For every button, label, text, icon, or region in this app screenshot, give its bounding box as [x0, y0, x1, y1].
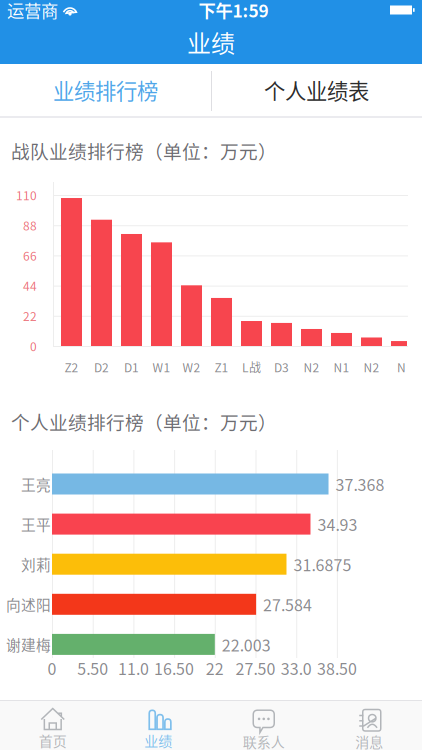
button[interactable]: 个人业绩表: [211, 64, 422, 116]
staticText: D3: [274, 358, 289, 376]
staticText: 业绩排行榜: [53, 75, 158, 105]
staticText: 首页: [39, 730, 67, 750]
staticText: 谢建梅: [6, 634, 51, 655]
staticText: N1: [333, 358, 349, 376]
staticText: 38.50: [317, 656, 357, 680]
staticText: 0: [30, 337, 37, 355]
staticText: 27.584: [263, 593, 312, 616]
staticText: 22: [206, 656, 224, 680]
staticText: 66: [23, 247, 37, 264]
staticText: 16.50: [154, 656, 194, 680]
staticText: 向述阳: [6, 594, 51, 615]
staticText: 0: [47, 656, 56, 680]
staticText: D2: [94, 358, 109, 376]
staticText: D1: [124, 358, 139, 376]
staticText: 22: [23, 307, 37, 324]
staticText: 27.50: [235, 656, 275, 680]
staticText: 31.6875: [293, 553, 351, 576]
staticText: 运营商: [7, 0, 58, 23]
staticText: 个人业绩表: [264, 75, 369, 105]
staticText: 刘莉: [21, 554, 51, 575]
staticText: 34.93: [317, 512, 357, 536]
staticText: 33.0: [281, 656, 312, 680]
staticText: 11.0: [118, 656, 149, 680]
staticText: 110: [16, 186, 37, 204]
button[interactable]: 联系人: [211, 703, 316, 750]
staticText: W1: [152, 358, 170, 376]
button[interactable]: 消息: [316, 703, 422, 750]
staticText: N2: [303, 358, 319, 376]
staticText: Z2: [64, 358, 78, 376]
staticText: 王平: [21, 513, 51, 535]
button[interactable]: 业绩: [105, 704, 211, 749]
staticText: 联系人: [243, 731, 285, 750]
staticText: 消息: [355, 731, 383, 750]
staticText: 战队业绩排行榜（单位：万元）: [11, 137, 277, 164]
staticText: N: [397, 358, 406, 376]
staticText: 业绩: [187, 25, 235, 59]
button[interactable]: 首页: [0, 704, 105, 749]
staticText: 王亮: [21, 473, 51, 495]
staticText: 22.003: [222, 633, 271, 656]
staticText: L战: [242, 358, 261, 376]
staticText: 个人业绩排行榜（单位：万元）: [11, 408, 277, 435]
button[interactable]: 业绩排行榜: [0, 64, 211, 116]
staticText: 业绩: [144, 730, 172, 750]
staticText: W2: [182, 358, 200, 376]
staticText: 下午1:59: [198, 0, 268, 23]
staticText: 88: [23, 216, 37, 234]
staticText: 44: [23, 277, 37, 294]
staticText: N2: [363, 358, 379, 376]
staticText: Z1: [214, 358, 228, 376]
staticText: 5.50: [77, 656, 108, 680]
staticText: 37.368: [335, 472, 384, 496]
